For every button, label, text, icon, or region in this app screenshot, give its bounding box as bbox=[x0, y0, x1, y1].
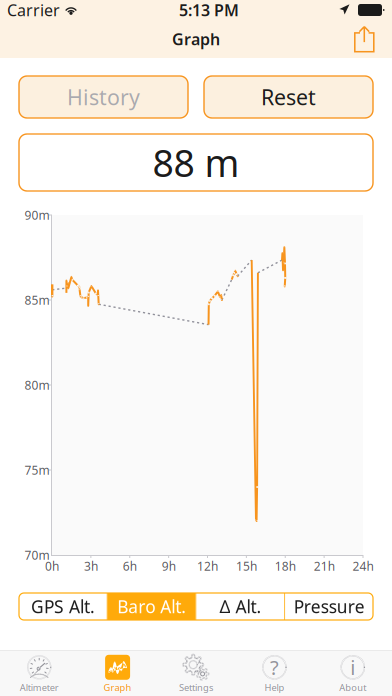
staticText: Baro Alt. bbox=[117, 595, 186, 618]
button[interactable]: Settings bbox=[157, 650, 235, 696]
staticText: 24h bbox=[352, 558, 373, 574]
button[interactable]: Altimeter bbox=[0, 650, 78, 696]
button[interactable]: ? bbox=[235, 650, 314, 696]
staticText: 85m bbox=[24, 292, 49, 308]
staticText: 80m bbox=[24, 377, 49, 393]
staticText: Graph bbox=[172, 28, 220, 50]
staticText: History bbox=[67, 83, 140, 111]
staticText: Δ Alt. bbox=[219, 595, 261, 618]
staticText: 70m bbox=[24, 547, 49, 563]
button[interactable]: Baro Alt. bbox=[108, 593, 196, 620]
staticText: 6h bbox=[123, 558, 137, 574]
staticText: 88 m bbox=[152, 138, 239, 187]
staticText: ? bbox=[270, 654, 279, 681]
button[interactable]: i bbox=[314, 650, 392, 696]
button[interactable]: Graph bbox=[78, 650, 157, 696]
staticText: Reset bbox=[261, 83, 316, 111]
staticText: 5:13 PM bbox=[179, 0, 239, 21]
staticText: 90m bbox=[24, 207, 49, 223]
staticText: i bbox=[350, 654, 355, 681]
button[interactable]: Reset bbox=[204, 76, 373, 118]
staticText: GPS Alt. bbox=[31, 595, 95, 618]
button[interactable]: Share bbox=[348, 19, 381, 58]
staticText: 12h bbox=[197, 558, 218, 574]
staticText: Carrier bbox=[7, 0, 60, 21]
staticText: 3h bbox=[84, 558, 98, 574]
staticText: About bbox=[339, 681, 366, 694]
button[interactable]: History bbox=[19, 76, 188, 118]
button[interactable]: Δ Alt. bbox=[196, 593, 284, 620]
staticText: 21h bbox=[314, 558, 335, 574]
staticText: Help bbox=[264, 681, 284, 694]
staticText: 15h bbox=[236, 558, 257, 574]
staticText: Pressure bbox=[294, 595, 365, 618]
staticText: 0h bbox=[45, 558, 59, 574]
staticText: Graph bbox=[104, 681, 132, 694]
button[interactable]: GPS Alt. bbox=[19, 593, 107, 620]
staticText: Altimeter bbox=[20, 681, 59, 694]
staticText: Settings bbox=[179, 681, 213, 694]
button[interactable]: Pressure bbox=[285, 593, 373, 620]
staticText: 18h bbox=[275, 558, 296, 574]
staticText: 9h bbox=[162, 558, 176, 574]
staticText: 75m bbox=[24, 462, 49, 478]
